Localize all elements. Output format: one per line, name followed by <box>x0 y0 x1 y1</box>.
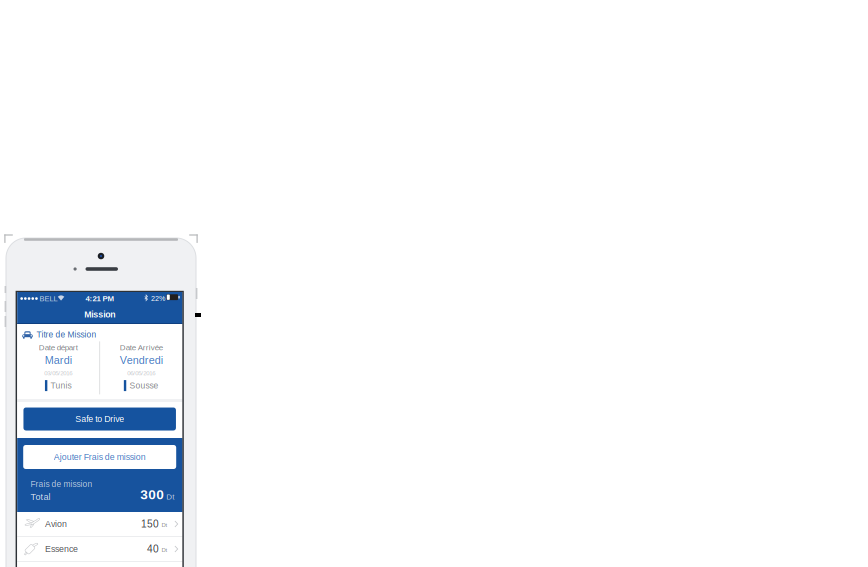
staticText: 4:21 PM <box>85 294 114 303</box>
staticText: Date Arrivée <box>120 343 163 352</box>
button[interactable]: Ajouter Frais de mission <box>23 445 176 469</box>
staticText: Tunis <box>51 381 72 390</box>
staticText: Dt <box>166 492 174 501</box>
staticText: Sousse <box>129 381 158 390</box>
staticText: 06/05/2016 <box>127 370 155 377</box>
staticText: Essence <box>45 544 78 554</box>
button[interactable]: Avion <box>17 512 182 536</box>
staticText: Dt <box>161 547 167 553</box>
staticText: Frais de mission <box>31 479 93 489</box>
staticText: Vendredi <box>120 354 163 366</box>
staticText: 300 <box>140 487 164 502</box>
staticText: Total <box>31 492 51 502</box>
staticText: Ajouter Frais de mission <box>54 452 146 462</box>
staticText: Mission <box>84 310 115 319</box>
staticText: Date départ <box>39 343 78 352</box>
staticText: 22% <box>151 295 165 303</box>
staticText: Dt <box>161 522 167 528</box>
staticText: Mardi <box>45 354 72 366</box>
button[interactable]: Titre de Mission <box>17 324 182 339</box>
staticText: Safe to Drive <box>75 414 124 424</box>
button[interactable]: Safe to Drive <box>23 407 176 430</box>
staticText: 150 <box>141 518 159 530</box>
button[interactable]: Essence <box>17 537 182 561</box>
staticText: Avion <box>45 519 67 529</box>
staticText: BELL <box>40 295 58 303</box>
staticText: 40 <box>147 543 159 555</box>
staticText: Titre de Mission <box>37 330 97 339</box>
staticText: 03/05/2016 <box>44 370 72 377</box>
